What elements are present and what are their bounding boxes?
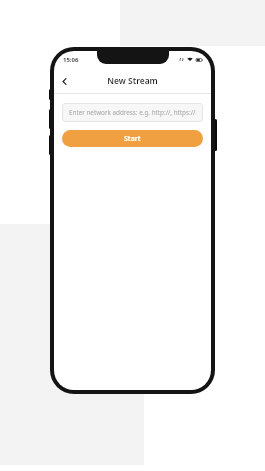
staticText: Enter network address: e.g. http://, htt… xyxy=(69,108,196,117)
button[interactable]: Start xyxy=(62,130,203,147)
button[interactable]: Back xyxy=(54,71,74,91)
staticText: Start xyxy=(124,134,141,144)
button[interactable]: Enter network address: e.g. http://, htt… xyxy=(62,103,203,122)
staticText: 15:06 xyxy=(63,56,79,64)
staticText: New Stream xyxy=(107,75,158,87)
